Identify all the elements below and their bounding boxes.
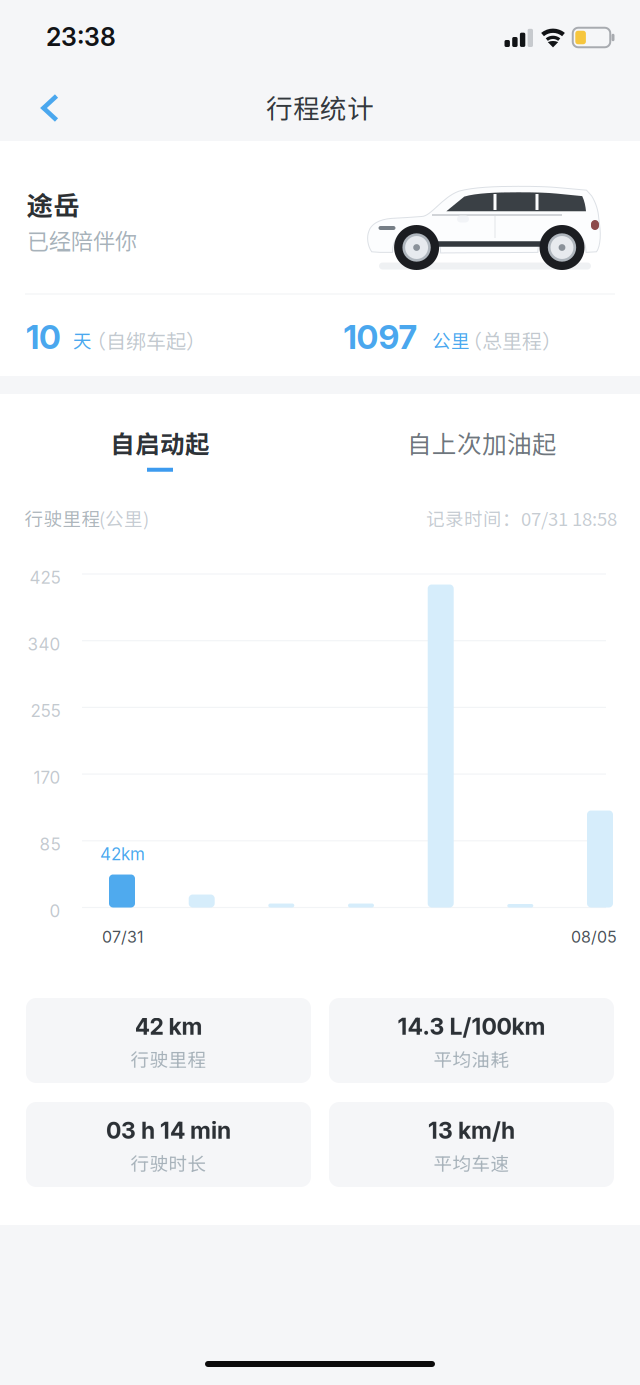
staticText: 23:38 — [46, 22, 116, 52]
staticText: 255 — [30, 701, 60, 721]
staticText: 自启动起 — [110, 425, 210, 460]
button[interactable]: 13 km/h — [329, 1102, 614, 1187]
button[interactable]: 03 h 14 min — [26, 1102, 311, 1187]
staticText: (公里) — [99, 505, 149, 531]
staticText: 行驶里程 — [130, 1045, 206, 1072]
staticText: 途岳 — [26, 185, 80, 223]
staticText: 记录时间：07/31 18:58 — [426, 505, 617, 531]
staticText: 10 — [26, 317, 61, 357]
staticText: 行驶里程 — [24, 505, 100, 531]
staticText: 03 h 14 min — [106, 1116, 231, 1144]
staticText: 14.3 L/100km — [397, 1012, 545, 1040]
staticText: 42km — [100, 844, 145, 864]
staticText: 85 — [39, 834, 60, 855]
button[interactable]: 14.3 L/100km — [329, 998, 614, 1083]
staticText: 340 — [27, 634, 60, 654]
button[interactable]: 自启动起 — [20, 394, 300, 494]
staticText: 已经陪伴你 — [27, 224, 137, 256]
staticText: 425 — [29, 567, 60, 588]
staticText: （总里程） — [462, 325, 562, 354]
staticText: 07/31 — [102, 927, 144, 947]
staticText: 自上次加油起 — [407, 425, 557, 460]
staticText: 平均油耗 — [433, 1045, 509, 1072]
staticText: 行驶时长 — [130, 1149, 206, 1176]
staticText: 08/05 — [571, 927, 617, 947]
button[interactable]: Back — [19, 77, 81, 139]
staticText: 42 km — [134, 1012, 202, 1040]
button[interactable]: 42 km — [26, 998, 311, 1083]
staticText: 天 — [73, 327, 92, 353]
staticText: 行程统计 — [266, 88, 374, 126]
staticText: 平均车速 — [433, 1149, 509, 1176]
staticText: 0 — [49, 901, 60, 921]
button[interactable]: 自上次加油起 — [342, 394, 622, 494]
staticText: 公里 — [432, 327, 470, 353]
staticText: 170 — [33, 767, 60, 788]
staticText: （自绑车起） — [86, 325, 206, 354]
staticText: 1097 — [343, 317, 417, 357]
staticText: 13 km/h — [428, 1116, 515, 1144]
